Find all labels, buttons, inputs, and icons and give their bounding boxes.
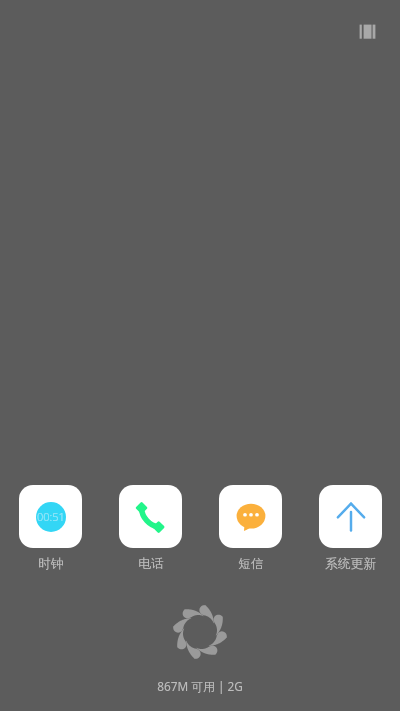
- staticText: 短信: [238, 556, 264, 572]
- staticText: 00:51: [37, 509, 65, 524]
- button[interactable]: 00:51: [19, 485, 82, 572]
- staticText: 电话: [138, 556, 164, 572]
- button[interactable]: SIM status: [358, 23, 377, 40]
- button[interactable]: 电话: [119, 485, 182, 572]
- staticText: 867M 可用 | 2G: [0, 678, 400, 694]
- button[interactable]: 短信: [219, 485, 282, 572]
- staticText: 时钟: [38, 556, 64, 572]
- staticText: 系统更新: [325, 556, 376, 572]
- button[interactable]: 系统更新: [319, 485, 382, 572]
